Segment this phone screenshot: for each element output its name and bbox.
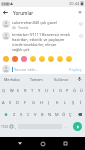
button[interactable]: ?123 [0,120,9,133]
staticText: , [15,124,17,129]
staticText: I [53,88,55,93]
button[interactable]: Shift [0,108,11,120]
staticText: V [34,112,37,117]
staticText: Y [38,88,41,93]
button[interactable]: A [0,96,7,108]
button[interactable]: Home [37,138,48,149]
button[interactable]: Back [0,7,11,18]
staticText: R [24,88,27,93]
button[interactable]: U [43,84,50,96]
button[interactable]: X [18,108,25,120]
staticText: tentarber1f1111 Benzersiz emek [12,32,71,37]
button[interactable]: Emoji reaction [10,55,19,63]
button[interactable]: Voice input [74,74,85,84]
button[interactable]: İ [77,96,85,108]
staticText: Paylaş [69,67,82,72]
button[interactable]: Send [73,122,82,131]
button[interactable]: Backspace [74,108,85,120]
button[interactable]: Ü [78,84,85,96]
button[interactable]: W [8,84,15,96]
button[interactable]: Emoji reaction [37,55,46,63]
staticText: T [31,88,34,93]
button[interactable]: Merhaba [0,74,24,84]
button[interactable]: Y [36,84,43,96]
button[interactable]: More options [74,7,85,18]
button[interactable]: T [29,84,36,96]
staticText: İ [80,100,82,105]
button[interactable]: cuberrehan040 çok güzel [0,20,85,30]
button[interactable]: Recents [60,138,71,149]
button[interactable]: Like [77,20,84,27]
staticText: Q [2,88,6,93]
staticText: Tamam [30,77,43,82]
button[interactable]: Emoji keyboard [9,120,14,133]
staticText: E [17,88,20,93]
button[interactable]: L [61,96,69,108]
staticText: . [65,124,67,129]
button[interactable]: Ğ [71,84,78,96]
staticText: Ö [62,112,66,117]
button[interactable]: H [37,96,45,108]
staticText: A [2,100,5,105]
button[interactable]: Ş [69,96,77,108]
button[interactable]: N [46,108,53,120]
button[interactable]: F [21,96,29,108]
button[interactable]: J [45,96,53,108]
staticText: 4h Yanıtla [12,26,29,30]
button[interactable]: Q [0,84,8,96]
button[interactable]: Kullanıcı [49,74,74,84]
button[interactable]: Emoji reaction [46,55,55,63]
button[interactable]: Emoji reaction [55,55,64,63]
button[interactable]: Emoji reaction [19,55,28,63]
button[interactable]: V [32,108,39,120]
staticText: Kullanıcı [54,77,69,82]
staticText: C [27,112,30,117]
staticText: Yorum ekle... [14,67,39,72]
staticText: 20:44 [69,1,80,6]
button[interactable]: Z [11,108,18,120]
button[interactable]: Ö [60,108,67,120]
staticText: K [56,100,59,105]
button[interactable]: G [29,96,37,108]
button[interactable]: Emoji reaction [64,55,73,63]
staticText: G [32,100,35,105]
button[interactable]: D [14,96,21,108]
button[interactable]: tentarber1f1111 Benzersiz emek [0,32,85,52]
button[interactable]: Ç [67,108,74,120]
staticText: J [48,100,50,105]
button[interactable]: Back [14,138,25,149]
button[interactable]: Paylaş [68,66,83,73]
button[interactable]: E [15,84,22,96]
staticText: icinde tesekkürler, elinize [12,42,57,47]
button[interactable]: K [53,96,61,108]
button[interactable]: , [14,120,18,133]
staticText: M [55,112,59,117]
staticText: cuberrehan040 çok güzel [12,20,57,25]
staticText: F [24,100,27,105]
button[interactable]: Like [77,32,84,39]
button[interactable]: C [25,108,32,120]
staticText: X [20,112,23,117]
button[interactable]: O [57,84,64,96]
button[interactable]: P [64,84,71,96]
staticText: L [64,100,67,105]
staticText: S [9,100,12,105]
staticText: B [41,112,44,117]
button[interactable]: B [39,108,46,120]
staticText: P [66,88,69,93]
button[interactable]: I [50,84,57,96]
button[interactable]: Emoji reaction [1,55,10,63]
button[interactable]: Emoji reaction [28,55,37,63]
staticText: Ç [69,112,72,117]
staticText: Ğ [73,88,76,93]
staticText: Yorumlar [13,10,34,16]
button[interactable]: M [53,108,60,120]
staticText: Z [13,112,16,117]
button[interactable]: Tamam [24,74,49,84]
button[interactable]: S [7,96,14,108]
staticText: H [40,100,43,105]
staticText: O [59,88,63,93]
button[interactable]: R [22,84,29,96]
